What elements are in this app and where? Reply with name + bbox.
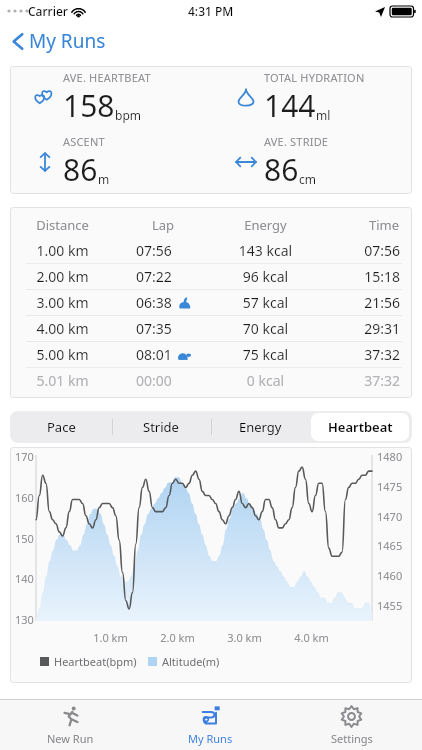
button[interactable]: My Runs — [140, 700, 281, 750]
staticText: 21:56 — [320, 293, 400, 312]
staticText: 57 kcal — [211, 293, 320, 312]
staticText: 144 — [264, 85, 316, 126]
staticText: Time — [369, 216, 400, 234]
staticText: 1470 — [377, 509, 403, 524]
staticText: 2.00 km — [10, 267, 115, 286]
staticText: 140 — [15, 571, 34, 586]
button[interactable]: 4.00 km — [10, 316, 412, 341]
button[interactable]: Settings — [281, 700, 422, 750]
staticText: 06:38 — [136, 293, 172, 312]
staticText: 37:32 — [320, 371, 400, 390]
staticText: Stride — [143, 418, 179, 436]
staticText: 150 — [15, 531, 34, 546]
staticText: 07:56 — [136, 241, 172, 260]
button[interactable]: Stride — [112, 413, 209, 441]
staticText: Settings — [331, 731, 373, 746]
staticText: AVE. HEARTBEAT — [63, 70, 151, 85]
staticText: Heartbeat — [328, 418, 393, 436]
staticText: 00:00 — [136, 371, 172, 390]
staticText: Energy — [239, 418, 282, 436]
staticText: 143 kcal — [211, 241, 320, 260]
staticText: Pace — [47, 418, 76, 436]
staticText: 1465 — [377, 538, 403, 553]
staticText: m — [98, 171, 110, 187]
staticText: 08:01 — [136, 345, 172, 364]
staticText: 4:31 PM — [188, 3, 234, 19]
staticText: 2.0 km — [144, 630, 211, 645]
staticText: Lap — [115, 216, 211, 234]
staticText: 170 — [15, 449, 34, 464]
button[interactable]: 5.01 km — [10, 368, 412, 393]
staticText: 07:22 — [136, 267, 172, 286]
button[interactable]: Back to My Runs — [0, 22, 422, 60]
staticText: cm — [299, 171, 316, 187]
staticText: 0 kcal — [211, 371, 320, 390]
staticText: bpm — [115, 107, 141, 123]
staticText: My Runs — [188, 731, 233, 746]
staticText: 15:18 — [320, 267, 400, 286]
staticText: 3.00 km — [10, 293, 115, 312]
staticText: 07:56 — [320, 241, 400, 260]
staticText: 5.00 km — [10, 345, 115, 364]
button[interactable]: Energy — [211, 413, 309, 441]
staticText: 86 — [264, 149, 299, 190]
staticText: Energy — [211, 216, 320, 234]
staticText: 75 kcal — [211, 345, 320, 364]
button[interactable]: 3.00 km — [10, 290, 412, 315]
staticText: 130 — [15, 612, 34, 627]
staticText: 1475 — [377, 479, 403, 494]
staticText: 5.01 km — [10, 371, 115, 390]
staticText: New Run — [47, 731, 94, 746]
staticText: 160 — [15, 490, 34, 505]
button[interactable]: 1.00 km — [10, 238, 412, 263]
staticText: 86 — [63, 149, 98, 190]
button[interactable]: 2.00 km — [10, 264, 412, 289]
staticText: 158 — [63, 85, 115, 126]
staticText: 29:31 — [320, 319, 400, 338]
staticText: 4.00 km — [10, 319, 115, 338]
staticText: 07:35 — [136, 319, 172, 338]
button[interactable]: Heartbeat — [311, 413, 409, 441]
staticText: TOTAL HYDRATION — [264, 70, 365, 85]
staticText: 1480 — [377, 449, 403, 464]
staticText: Distance — [10, 216, 115, 234]
staticText: ml — [316, 107, 331, 123]
button[interactable]: Pace — [13, 413, 110, 441]
staticText: 37:32 — [320, 345, 400, 364]
staticText: 3.0 km — [211, 630, 278, 645]
button[interactable]: 5.00 km — [10, 342, 412, 367]
staticText: 96 kcal — [211, 267, 320, 286]
staticText: AVE. STRIDE — [264, 134, 329, 149]
staticText: 1455 — [377, 598, 403, 613]
staticText: My Runs — [29, 28, 106, 54]
staticText: 1.00 km — [10, 241, 115, 260]
staticText: Carrier — [28, 3, 68, 19]
staticText: 70 kcal — [211, 319, 320, 338]
staticText: ASCENT — [63, 134, 105, 149]
staticText: Altitude(m) — [162, 654, 220, 669]
staticText: Heartbeat(bpm) — [54, 654, 137, 669]
staticText: 1.0 km — [77, 630, 144, 645]
staticText: 1460 — [377, 568, 403, 583]
staticText: 4.0 km — [278, 630, 345, 645]
button[interactable]: New Run — [0, 700, 140, 750]
